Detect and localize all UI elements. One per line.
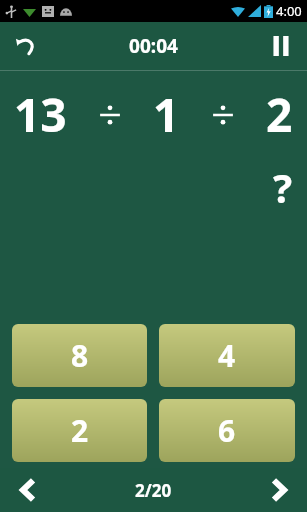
staticText: 13 <box>14 83 67 146</box>
button[interactable]: Previous <box>0 468 56 512</box>
staticText: 4:00 <box>276 2 302 20</box>
staticText: 2 <box>71 410 89 451</box>
staticText: 1 <box>153 83 180 146</box>
staticText: 2/20 <box>135 479 172 502</box>
button[interactable]: 4 <box>159 324 295 387</box>
button[interactable]: Pause <box>255 22 307 70</box>
staticText: ? <box>273 160 293 214</box>
button[interactable]: 2 <box>12 399 147 462</box>
staticText: 2 <box>266 83 293 146</box>
button[interactable]: Undo <box>0 22 52 70</box>
staticText: 00:04 <box>129 33 178 59</box>
staticText: 4 <box>218 335 236 376</box>
staticText: 6 <box>218 410 236 451</box>
button[interactable]: 6 <box>159 399 295 462</box>
button[interactable]: Next <box>251 468 307 512</box>
button[interactable]: 8 <box>12 324 147 387</box>
staticText: 8 <box>71 335 89 376</box>
